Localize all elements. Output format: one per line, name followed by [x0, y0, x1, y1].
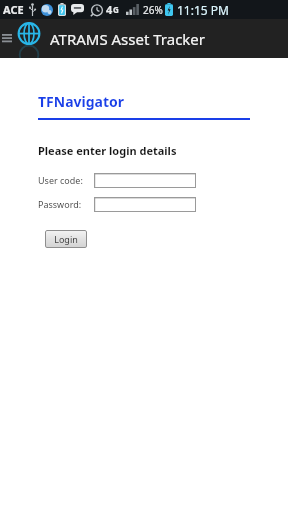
button[interactable]: Login [45, 230, 87, 248]
staticText: 26% [143, 3, 163, 17]
staticText: User code: [38, 174, 83, 186]
button[interactable] [94, 197, 196, 212]
button[interactable]: App logo [16, 22, 42, 56]
button[interactable]: Menu [0, 19, 14, 58]
staticText: TFNavigator [38, 92, 125, 111]
staticText: 11:15 PM [177, 2, 229, 18]
staticText: Please enter login details [38, 143, 177, 158]
staticText: ATRAMS Asset Tracker [50, 29, 206, 49]
button[interactable] [94, 173, 196, 188]
staticText: 4 [106, 2, 113, 17]
staticText: G [113, 4, 119, 15]
staticText: ACE [3, 2, 24, 17]
staticText: Login [54, 233, 78, 245]
staticText: Password: [38, 198, 82, 210]
